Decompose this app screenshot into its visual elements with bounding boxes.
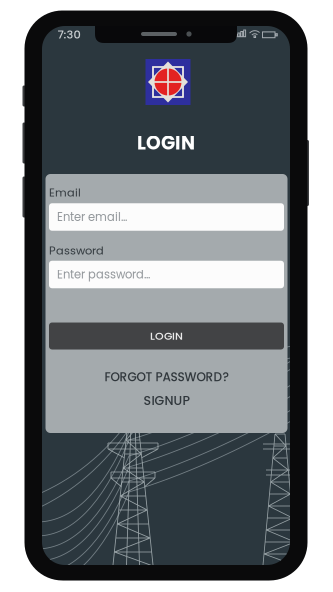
button[interactable]: FORGOT PASSWORD? [49,369,284,385]
staticText: SIGNUP [143,392,189,409]
button[interactable]: LOGIN [49,322,284,349]
button[interactable]: SIGNUP [49,392,284,408]
staticText: 7:30 [57,27,80,42]
staticText: FORGOT PASSWORD? [104,369,228,385]
staticText: Email [49,185,81,200]
staticText: LOGIN [150,328,183,344]
staticText: Password [49,243,104,258]
staticText: LOGIN [137,130,195,156]
staticText: Enter password... [57,266,150,283]
staticText: Enter email... [57,209,127,225]
